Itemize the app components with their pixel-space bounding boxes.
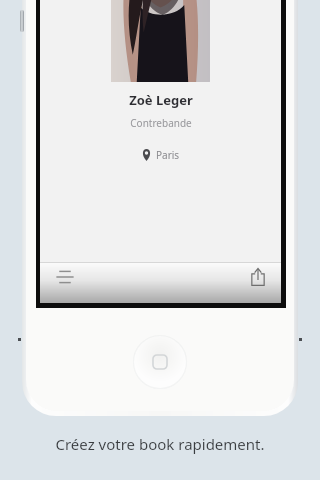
button[interactable]: Paris xyxy=(142,148,180,162)
staticText: Contrebande xyxy=(130,116,192,130)
staticText: Paris xyxy=(156,148,180,162)
button[interactable]: Share xyxy=(243,262,273,292)
button[interactable]: Menu xyxy=(50,262,80,292)
staticText: Zoè Leger xyxy=(129,91,193,109)
button[interactable] xyxy=(111,0,210,82)
staticText: Créez votre book rapidement. xyxy=(0,434,320,454)
button[interactable]: Home xyxy=(133,335,187,389)
